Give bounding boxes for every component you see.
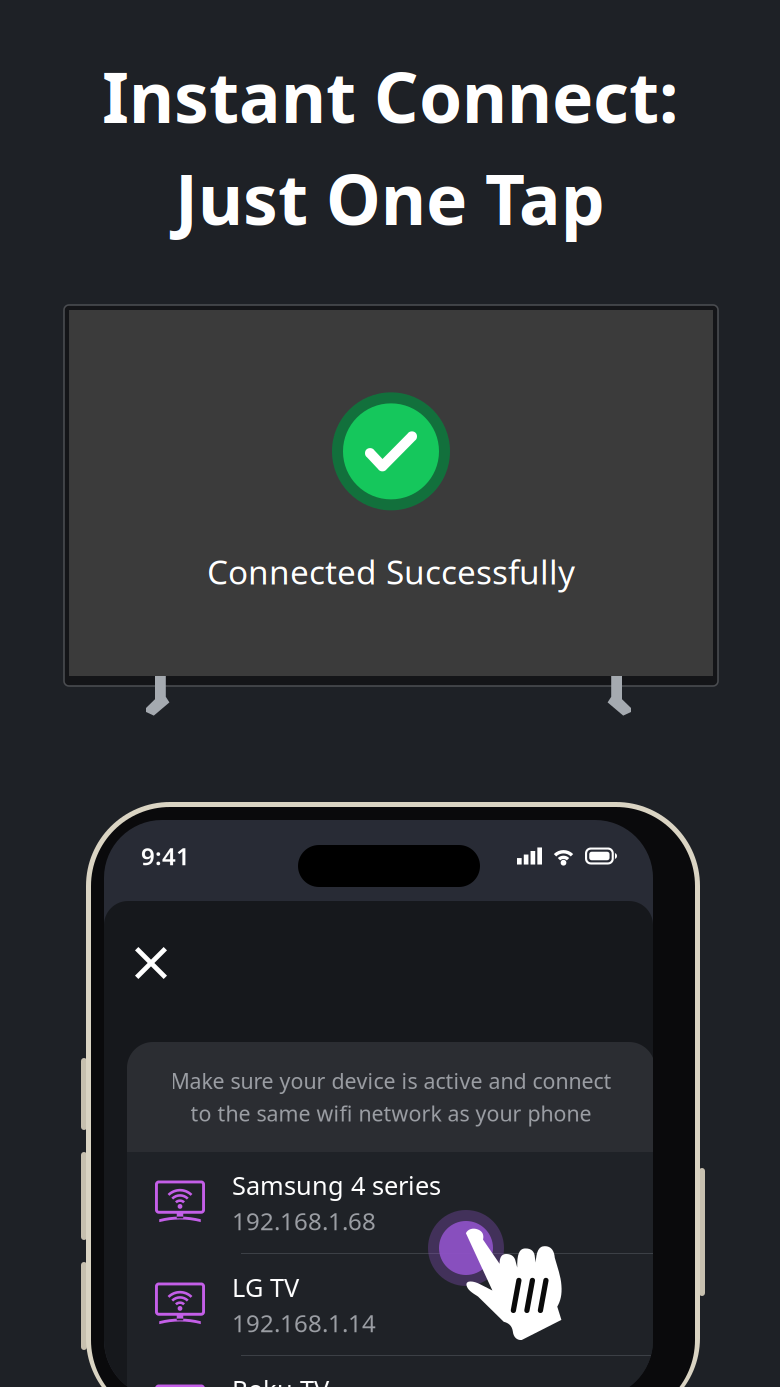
staticText: Roku TV	[232, 1372, 329, 1387]
staticText: 192.168.1.68	[232, 1205, 376, 1237]
staticText: 192.168.1.14	[232, 1307, 376, 1339]
staticText: 9:41	[141, 840, 190, 872]
staticText: Connected Successfully	[207, 549, 575, 594]
button[interactable]: LG TV	[127, 1254, 655, 1355]
staticText: Make sure your device is active and conn…	[170, 1067, 611, 1095]
button[interactable]: Roku TV	[127, 1356, 655, 1387]
staticText: to the same wifi network as your phone	[190, 1099, 591, 1127]
button[interactable]: Samsung 4 series	[127, 1152, 655, 1253]
staticText: Samsung 4 series	[232, 1168, 441, 1202]
staticText: Instant Connect:	[102, 50, 678, 142]
staticText: Just One Tap	[175, 152, 605, 244]
button[interactable]: Close	[121, 933, 181, 993]
staticText: LG TV	[232, 1270, 299, 1304]
